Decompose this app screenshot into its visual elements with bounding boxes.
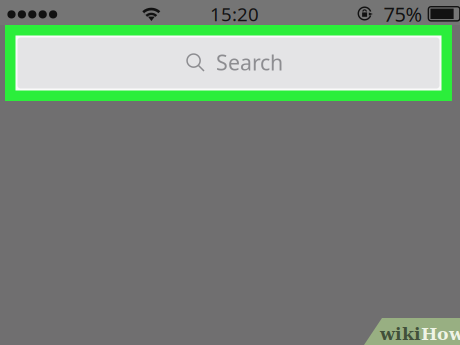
button[interactable]: Search — [17, 37, 439, 88]
staticText: 15:20 — [210, 2, 259, 26]
staticText: Search — [216, 48, 283, 76]
staticText: 75% — [383, 1, 422, 27]
staticText: How — [421, 324, 460, 344]
staticText: wiki — [380, 324, 421, 344]
